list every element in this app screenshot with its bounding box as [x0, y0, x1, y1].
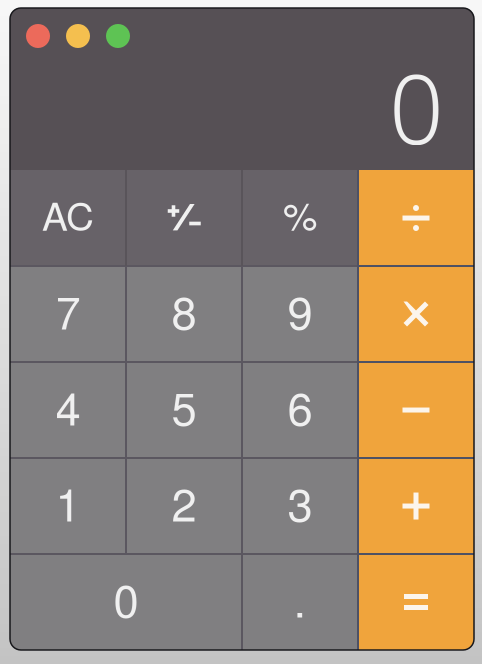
button[interactable]: Subtract: [358, 362, 474, 458]
button[interactable]: 5: [126, 362, 242, 458]
staticText: 6: [287, 373, 312, 438]
button[interactable]: 2: [126, 458, 242, 554]
staticText: AC: [42, 186, 94, 242]
button[interactable]: Equals: [358, 554, 474, 650]
button[interactable]: Minimise window: [66, 24, 90, 48]
button[interactable]: 3: [242, 458, 358, 554]
button[interactable]: Close window: [26, 24, 50, 48]
staticText: 9: [287, 277, 312, 342]
staticText: 8: [171, 277, 196, 342]
button[interactable]: 1: [10, 458, 126, 554]
button[interactable]: %: [242, 170, 358, 266]
staticText: 4: [55, 373, 80, 438]
button[interactable]: 6: [242, 362, 358, 458]
staticText: %: [283, 186, 317, 242]
button[interactable]: Add: [358, 458, 474, 554]
button[interactable]: Multiply: [358, 266, 474, 362]
button[interactable]: Zoom window: [106, 24, 130, 48]
staticText: .: [293, 565, 306, 630]
staticText: 2: [171, 469, 196, 534]
staticText: 5: [171, 373, 196, 438]
button[interactable]: 9: [242, 266, 358, 362]
button[interactable]: 4: [10, 362, 126, 458]
button[interactable]: Toggle sign: [126, 170, 242, 266]
staticText: 0: [113, 565, 138, 630]
button[interactable]: 0: [10, 554, 242, 650]
button[interactable]: 7: [10, 266, 126, 362]
button[interactable]: 8: [126, 266, 242, 362]
staticText: 3: [287, 469, 312, 534]
button[interactable]: Divide: [358, 170, 474, 266]
staticText: 7: [55, 277, 80, 342]
staticText: 0: [389, 42, 444, 172]
button[interactable]: AC: [10, 170, 126, 266]
staticText: 1: [55, 469, 80, 534]
button[interactable]: .: [242, 554, 358, 650]
